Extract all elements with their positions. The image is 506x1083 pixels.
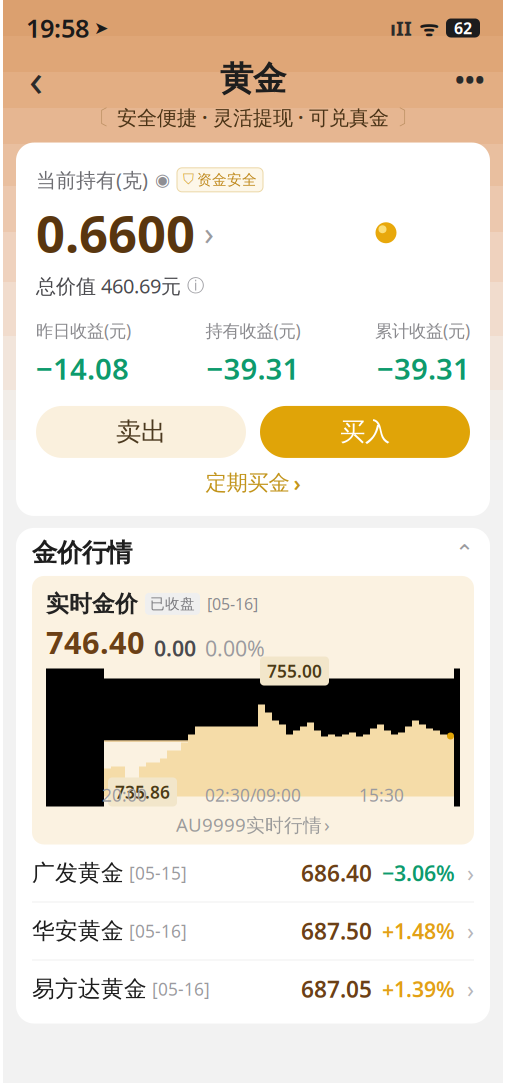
staticText: +1.48% [382, 917, 455, 945]
staticText: 安全便捷 · 灵活提现 · 可兑真金 [117, 104, 389, 131]
staticText: −39.31 [206, 349, 299, 388]
staticText: 687.50 [301, 916, 372, 946]
staticText: 02:30/09:00 [205, 783, 301, 806]
staticText: 昨日收益(元) [36, 319, 131, 342]
staticText: ••• [455, 62, 485, 96]
staticText: 0.00% [205, 634, 265, 662]
button[interactable]: 广发黄金 [32, 844, 474, 902]
button[interactable]: 定期买金 [36, 462, 470, 504]
staticText: › [467, 974, 474, 1004]
staticText: 金价行情 [32, 537, 132, 568]
button[interactable]: 买入 [260, 406, 470, 458]
button[interactable]: 卖出 [36, 406, 246, 458]
staticText: 卖出 [116, 416, 166, 447]
staticText: 已收盘 [150, 595, 195, 613]
staticText: ⛉ [183, 173, 194, 187]
staticText: 总价值 460.69元 [36, 272, 181, 299]
staticText: 资金安全 [197, 171, 257, 189]
button[interactable]: 返回 [14, 57, 58, 101]
staticText: [05-16] [207, 593, 258, 614]
staticText: › [467, 916, 474, 946]
staticText: 0.00 [154, 634, 196, 662]
staticText: ‹ [29, 49, 43, 109]
staticText: −39.31 [377, 349, 470, 388]
staticText: 广发黄金 [32, 859, 124, 887]
staticText: 买入 [340, 416, 390, 447]
button[interactable]: 0.6600 [36, 199, 214, 266]
staticText: › [204, 211, 214, 254]
staticText: › [324, 812, 330, 837]
staticText: ⓘ [187, 275, 204, 296]
staticText: [05-16] [124, 919, 187, 942]
staticText: ➤ [94, 18, 109, 38]
staticText: ◉ [155, 170, 170, 190]
staticText: › [293, 469, 300, 497]
staticText: 19:58 [26, 11, 89, 45]
staticText: [05-15] [124, 861, 187, 884]
staticText: ıII [390, 15, 412, 41]
staticText: 687.05 [301, 974, 372, 1004]
staticText: 定期买金 [205, 470, 289, 496]
staticText: › [467, 858, 474, 888]
staticText: 易方达黄金 [32, 975, 147, 1003]
staticText: 20:00 [102, 783, 147, 806]
staticText: 黄金 [220, 58, 286, 99]
staticText: 735.86 [115, 780, 170, 803]
staticText: AU9999实时行情 [176, 812, 322, 837]
staticText: 累计收益(元) [375, 319, 470, 342]
staticText: ⌃ [455, 540, 474, 566]
staticText: 62 [454, 17, 472, 39]
staticText: 686.40 [301, 858, 372, 888]
staticText: ᯤ [419, 14, 438, 42]
staticText: 持有收益(元) [205, 319, 300, 342]
staticText: 〔 [88, 104, 109, 130]
staticText: 华安黄金 [32, 917, 124, 945]
staticText: −3.06% [382, 859, 455, 887]
staticText: 15:30 [359, 783, 404, 806]
staticText: 746.40 [46, 622, 145, 662]
staticText: 〕 [397, 104, 418, 130]
button[interactable]: 更多 [448, 57, 492, 101]
staticText: +1.39% [382, 975, 455, 1003]
staticText: 755.00 [46, 668, 101, 691]
button[interactable]: 金价行情 [32, 530, 474, 576]
button[interactable]: 易方达黄金 [32, 960, 474, 1017]
staticText: 0.6600 [36, 199, 195, 266]
staticText: 当前持有(克) [36, 167, 148, 193]
button[interactable]: 华安黄金 [32, 902, 474, 960]
button[interactable]: AU9999实时行情 [46, 806, 460, 842]
staticText: 755.00 [267, 659, 322, 682]
staticText: [05-16] [147, 977, 210, 1000]
staticText: −14.08 [36, 349, 129, 388]
staticText: 实时金价 [46, 590, 138, 618]
